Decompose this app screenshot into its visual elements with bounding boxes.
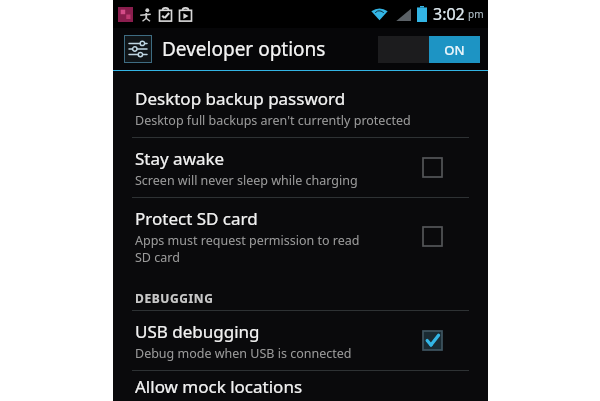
staticText: USB debugging [135,320,260,343]
staticText: Screen will never sleep while charging [135,172,358,189]
staticText: 3:02 [433,3,465,25]
staticText: Apps must request permission to read SD … [135,232,360,265]
button[interactable]: Developer options on/off switch [378,36,480,63]
button[interactable]: Developer options icon [124,35,152,63]
staticText: Developer options [162,36,326,62]
staticText: Protect SD card [135,207,258,230]
staticText: ON [444,41,465,59]
staticText: Allow mock locations [135,375,303,398]
button[interactable]: Allow mock locations [113,371,488,401]
button[interactable]: Stay awake [113,138,488,197]
staticText: Stay awake [135,147,225,170]
button[interactable]: Protect SD card [113,198,488,274]
button[interactable]: Unchecked [423,227,442,246]
button[interactable]: Unchecked [423,158,442,177]
staticText: Debug mode when USB is connected [135,345,352,362]
button[interactable]: Checked [423,331,442,350]
staticText: DEBUGGING [135,290,214,306]
staticText: pm [468,7,484,21]
staticText: Desktop full backups aren't currently pr… [135,112,411,129]
staticText: Desktop backup password [135,87,346,110]
button[interactable]: Desktop backup password [113,78,488,137]
button[interactable]: USB debugging [113,311,488,370]
